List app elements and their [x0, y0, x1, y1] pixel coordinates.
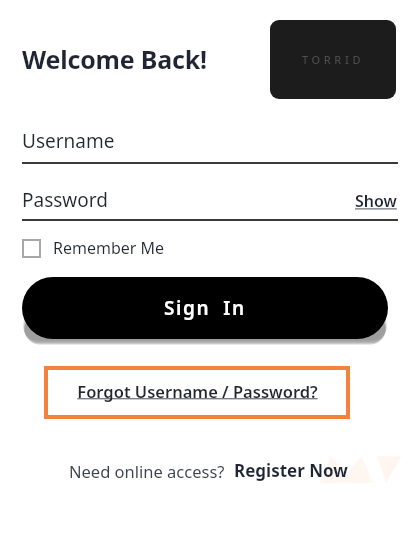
button[interactable]: Remember Me	[22, 235, 165, 261]
staticText: Register Now	[234, 459, 348, 482]
button[interactable]: Sign In	[22, 277, 388, 339]
staticText: Welcome Back!	[22, 42, 207, 76]
staticText: Username	[22, 128, 115, 154]
button[interactable]: Register Now	[234, 459, 348, 482]
button[interactable]: Password	[22, 187, 108, 213]
staticText: Need online access?	[69, 460, 225, 482]
staticText: Remember Me	[53, 237, 165, 259]
button[interactable]: Username	[0, 120, 410, 162]
button[interactable]: Show	[354, 190, 398, 212]
button[interactable]: Torrid logo	[270, 20, 396, 99]
staticText: Sign In	[164, 295, 246, 321]
button[interactable]: Forgot Username / Password?	[44, 366, 350, 419]
staticText: Show	[355, 190, 397, 212]
staticText: TORRID	[302, 52, 365, 67]
staticText: Forgot Username / Password?	[77, 380, 318, 402]
